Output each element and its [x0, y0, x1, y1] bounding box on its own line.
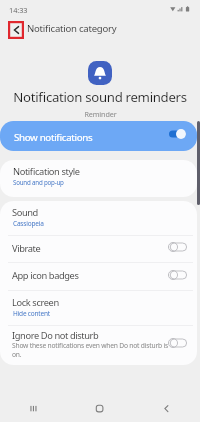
button[interactable]: Back: [133, 395, 200, 422]
button[interactable]: App icon badges: [0, 262, 197, 290]
staticText: Vibrate: [12, 242, 41, 255]
staticText: Lock screen: [12, 296, 59, 309]
button[interactable]: Navigate up: [8, 21, 24, 39]
staticText: Show notifications: [14, 131, 93, 144]
button[interactable]: Vibrate: [0, 235, 197, 262]
staticText: Sound: [12, 206, 38, 219]
staticText: Cassiopeia: [13, 219, 44, 228]
staticText: App icon badges: [12, 269, 79, 282]
staticText: Reminder: [84, 109, 117, 119]
button[interactable]: Notification style: [0, 160, 197, 197]
button[interactable]: Home: [66, 395, 133, 422]
staticText: Notification category: [27, 22, 117, 35]
staticText: Sound and pop-up: [13, 178, 64, 186]
button[interactable]: Show notifications: [0, 121, 197, 151]
staticText: Notification style: [13, 165, 80, 178]
staticText: 14:33: [9, 5, 28, 15]
button[interactable]: Ignore Do not disturb: [0, 325, 197, 365]
staticText: Show these notifications even when Do no…: [12, 341, 175, 359]
staticText: Hide content: [13, 309, 50, 318]
button[interactable]: Sound: [0, 201, 197, 235]
staticText: Ignore Do not disturb: [12, 329, 99, 342]
staticText: Notification sound reminders: [13, 88, 187, 106]
button[interactable]: Recent apps: [0, 395, 66, 422]
button[interactable]: Lock screen: [0, 290, 197, 325]
